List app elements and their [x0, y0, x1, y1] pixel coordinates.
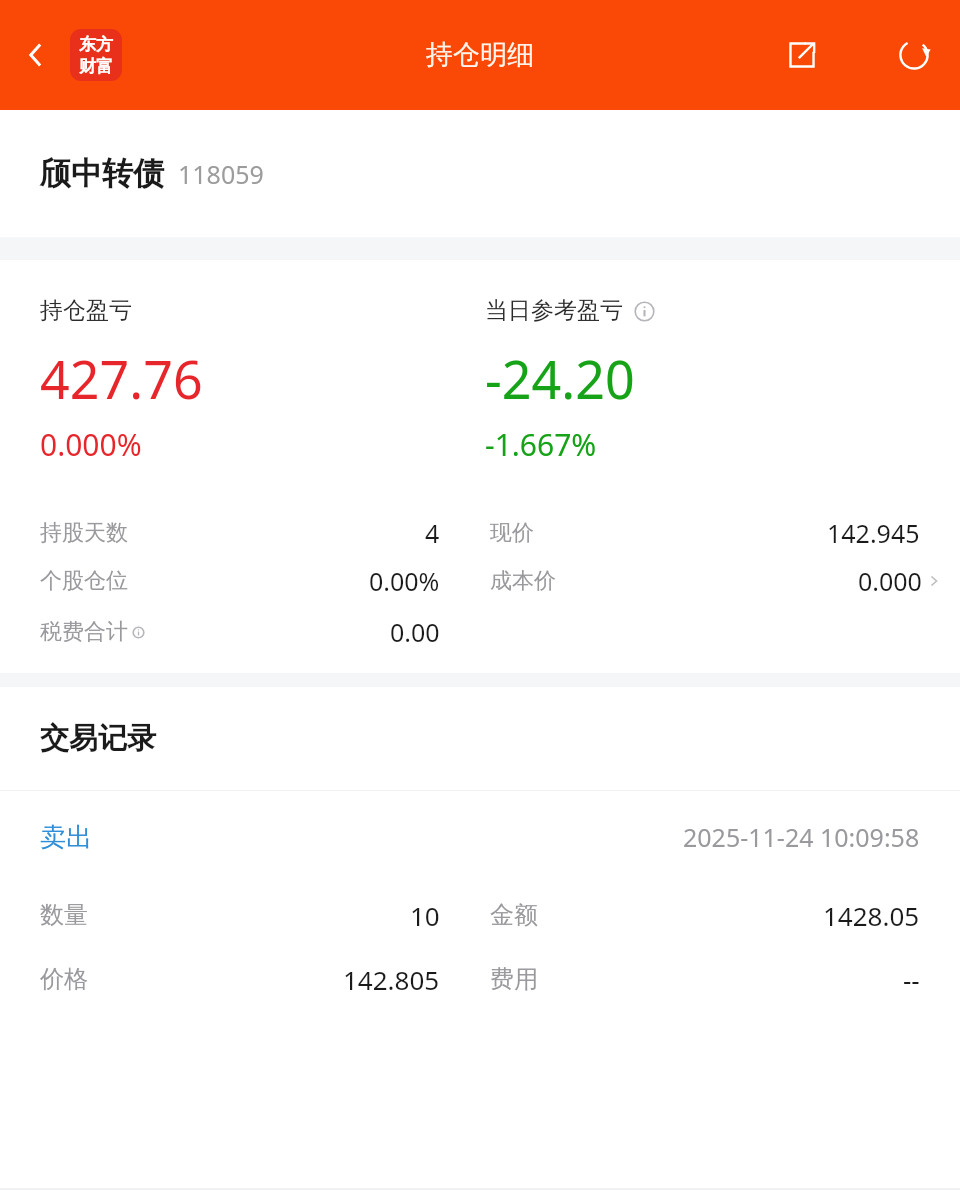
staticText: 现价: [490, 519, 534, 547]
button[interactable]: Refresh: [886, 27, 942, 83]
staticText: 142.805: [343, 962, 440, 997]
button[interactable]: 税费合计: [0, 605, 480, 659]
staticText: 颀中转债: [40, 154, 164, 193]
button[interactable]: 现价: [480, 509, 960, 557]
staticText: 0.00: [390, 615, 440, 649]
staticText: 2025-11-24 10:09:58: [683, 820, 920, 854]
staticText: 金额: [490, 900, 538, 930]
button[interactable]: 卖出: [0, 791, 960, 883]
button[interactable]: 价格: [0, 947, 480, 1011]
button[interactable]: 数量: [0, 883, 480, 947]
staticText: -1.667%: [485, 424, 597, 465]
staticText: 税费合计: [40, 618, 128, 646]
staticText: 10: [410, 898, 440, 933]
staticText: 东方: [79, 34, 113, 55]
button[interactable]: 个股仓位: [0, 557, 480, 605]
button[interactable]: Share: [774, 27, 830, 83]
staticText: 卖出: [40, 821, 92, 854]
staticText: 0.000%: [40, 424, 142, 465]
staticText: 427.76: [40, 343, 203, 414]
button[interactable]: Back: [8, 27, 64, 83]
button[interactable]: 颀中转债: [0, 110, 960, 237]
staticText: 交易记录: [40, 720, 156, 757]
staticText: 1428.05: [823, 898, 920, 933]
button[interactable]: 费用: [480, 947, 960, 1011]
staticText: 当日参考盈亏: [485, 296, 623, 325]
button[interactable]: 说明: [631, 298, 657, 324]
staticText: 个股仓位: [40, 567, 128, 595]
staticText: 费用: [490, 964, 538, 994]
staticText: 0.000: [858, 564, 922, 598]
staticText: 4: [425, 516, 440, 550]
staticText: --: [903, 962, 920, 997]
staticText: 价格: [40, 964, 88, 994]
staticText: 成本价: [490, 567, 556, 595]
staticText: 持股天数: [40, 519, 128, 547]
staticText: 0.00%: [369, 564, 440, 598]
button[interactable]: 金额: [480, 883, 960, 947]
staticText: 财富: [79, 56, 113, 77]
button[interactable]: 成本价: [480, 557, 960, 605]
staticText: 118059: [178, 157, 264, 191]
button[interactable]: 持股天数: [0, 509, 480, 557]
staticText: 持仓盈亏: [40, 296, 132, 325]
staticText: 142.945: [827, 516, 920, 550]
staticText: 持仓明细: [426, 38, 534, 72]
button[interactable]: 东方财富: [70, 29, 122, 81]
staticText: 数量: [40, 900, 88, 930]
staticText: -24.20: [485, 343, 635, 414]
